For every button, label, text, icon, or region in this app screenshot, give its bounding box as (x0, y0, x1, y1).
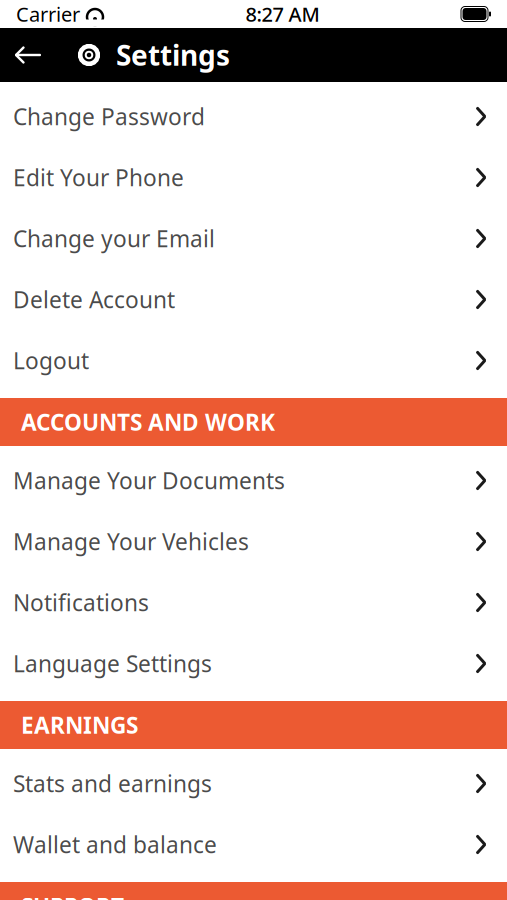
staticText: EARNINGS (21, 710, 138, 740)
button[interactable]: Delete Account (0, 269, 507, 330)
button[interactable]: Back (4, 28, 52, 82)
staticText: ACCOUNTS AND WORK (21, 407, 275, 437)
button[interactable]: Language Settings (0, 633, 507, 694)
button[interactable]: Wallet and balance (0, 814, 507, 875)
staticText: Language Settings (13, 648, 212, 678)
staticText: Manage Your Vehicles (13, 526, 249, 556)
staticText: Change your Email (13, 223, 215, 253)
staticText: Settings (116, 36, 230, 74)
staticText: SUPPORT (21, 891, 124, 900)
staticText: Edit Your Phone (13, 162, 184, 192)
staticText: Change Password (13, 101, 205, 131)
staticText: Delete Account (13, 284, 175, 314)
button[interactable]: Stats and earnings (0, 753, 507, 814)
staticText: Stats and earnings (13, 768, 212, 798)
staticText: Wallet and balance (13, 829, 217, 859)
staticText: Carrier (16, 1, 80, 27)
staticText: 8:27 AM (245, 1, 319, 27)
button[interactable]: Edit Your Phone (0, 147, 507, 208)
button[interactable]: Change Password (0, 86, 507, 147)
staticText: Notifications (13, 587, 149, 617)
button[interactable]: Notifications (0, 572, 507, 633)
button[interactable]: Manage Your Documents (0, 450, 507, 511)
staticText: Manage Your Documents (13, 465, 285, 495)
button[interactable]: Change your Email (0, 208, 507, 269)
staticText: Logout (13, 345, 89, 375)
button[interactable]: Logout (0, 330, 507, 391)
button[interactable]: Manage Your Vehicles (0, 511, 507, 572)
